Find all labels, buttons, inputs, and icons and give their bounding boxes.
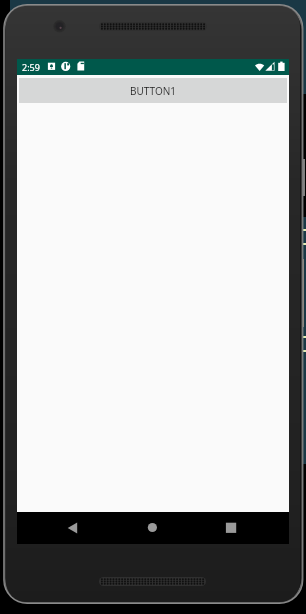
staticText: 2:59 — [22, 61, 40, 73]
staticText: BUTTON1 — [130, 84, 177, 98]
button[interactable]: BUTTON1 — [19, 78, 287, 103]
button[interactable]: Recents — [211, 512, 251, 544]
button[interactable]: Back — [53, 512, 93, 544]
button[interactable]: Home — [133, 512, 173, 544]
